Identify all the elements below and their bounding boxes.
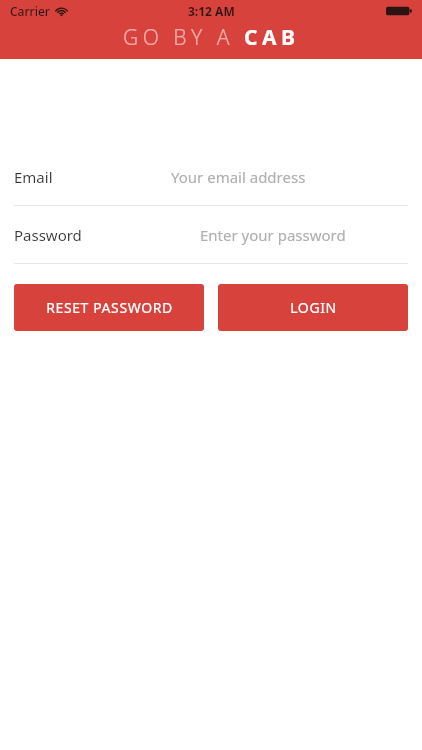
button[interactable]: Email <box>0 148 422 206</box>
button[interactable]: LOGIN <box>218 284 408 331</box>
staticText: 3:12 AM <box>188 3 235 19</box>
staticText: RESET PASSWORD <box>46 298 173 317</box>
staticText: CAB <box>244 23 300 52</box>
staticText: Your email address <box>171 167 306 187</box>
staticText: Email <box>14 167 53 187</box>
staticText: Password <box>14 225 82 245</box>
staticText: GO BY A <box>123 23 244 52</box>
staticText: Carrier <box>10 3 50 19</box>
staticText: Enter your password <box>200 225 346 245</box>
button[interactable]: RESET PASSWORD <box>14 284 204 331</box>
staticText: LOGIN <box>290 298 337 317</box>
button[interactable]: Password <box>0 206 422 264</box>
